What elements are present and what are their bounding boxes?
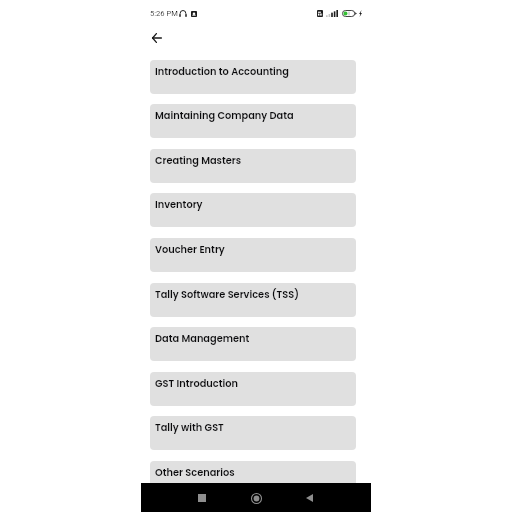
- button[interactable]: Voucher Entry: [150, 238, 356, 272]
- staticText: Creating Masters: [155, 154, 242, 168]
- button[interactable]: Maintaining Company Data: [150, 104, 356, 138]
- button[interactable]: Introduction to Accounting: [150, 60, 356, 94]
- button[interactable]: Back: [145, 26, 169, 50]
- button[interactable]: Creating Masters: [150, 149, 356, 183]
- button[interactable]: Data Management: [150, 327, 356, 361]
- staticText: GST Introduction: [155, 377, 238, 391]
- staticText: Other Scenarios: [155, 466, 235, 480]
- button[interactable]: Tally with GST: [150, 416, 356, 450]
- staticText: Maintaining Company Data: [155, 109, 294, 123]
- button[interactable]: Other Scenarios: [150, 461, 356, 495]
- button[interactable]: Home: [245, 487, 267, 509]
- staticText: 5:26 PM: [150, 9, 178, 18]
- button[interactable]: Back: [298, 487, 320, 509]
- button[interactable]: Inventory: [150, 193, 356, 227]
- staticText: Data Management: [155, 332, 250, 346]
- button[interactable]: Recent apps: [191, 487, 213, 509]
- staticText: Inventory: [155, 198, 203, 212]
- button[interactable]: Tally Software Services (TSS): [150, 283, 356, 317]
- staticText: Tally Software Services (TSS): [155, 288, 299, 302]
- staticText: Voucher Entry: [155, 243, 225, 257]
- staticText: Introduction to Accounting: [155, 65, 289, 79]
- staticText: Tally with GST: [155, 421, 224, 435]
- button[interactable]: GST Introduction: [150, 372, 356, 406]
